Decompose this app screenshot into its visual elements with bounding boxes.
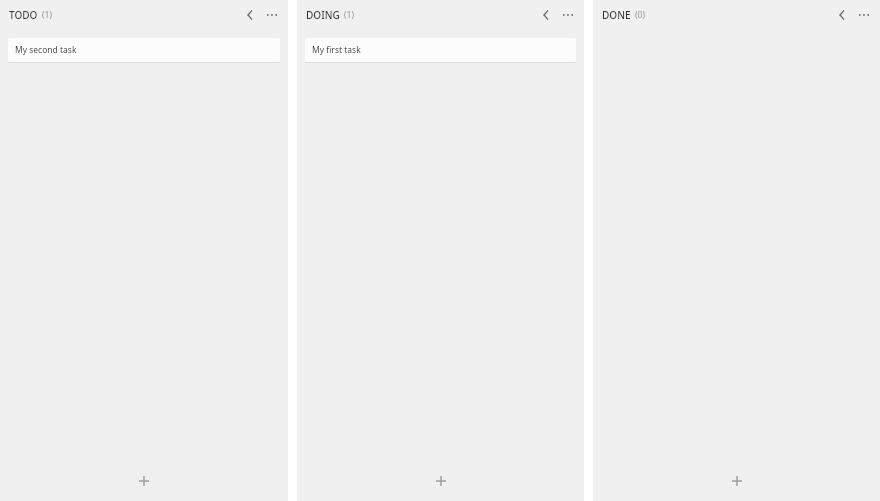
button[interactable]: List actions — [263, 6, 281, 24]
button[interactable]: My first task — [305, 38, 576, 63]
button[interactable]: List actions — [855, 6, 873, 24]
staticText: (1) — [344, 9, 354, 21]
staticText: My first task — [312, 44, 361, 56]
staticText: TODO — [9, 8, 38, 22]
staticText: (1) — [42, 9, 52, 21]
button[interactable]: Add card — [0, 461, 288, 501]
button[interactable]: Add card — [593, 461, 880, 501]
staticText: My second task — [15, 44, 77, 56]
staticText: (0) — [635, 9, 645, 21]
staticText: DONE — [602, 8, 631, 22]
button[interactable]: List actions — [559, 6, 577, 24]
button[interactable]: Collapse list — [833, 6, 851, 24]
button[interactable]: Collapse list — [537, 6, 555, 24]
button[interactable]: My second task — [8, 38, 280, 63]
button[interactable]: Add card — [297, 461, 584, 501]
button[interactable]: Collapse list — [241, 6, 259, 24]
staticText: DOING — [306, 8, 340, 22]
